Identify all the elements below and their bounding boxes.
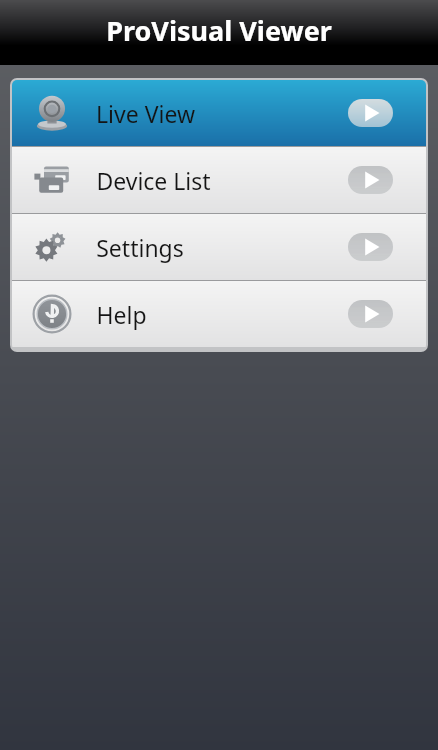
staticText: Device List: [96, 165, 211, 196]
button[interactable]: Live View: [12, 80, 426, 146]
button[interactable]: Settings: [12, 214, 426, 280]
staticText: Live View: [96, 98, 195, 129]
button[interactable]: Open: [348, 300, 393, 328]
button[interactable]: Open: [348, 99, 393, 127]
button[interactable]: Open: [348, 233, 393, 261]
button[interactable]: Help: [12, 281, 426, 347]
button[interactable]: Open: [348, 166, 393, 194]
staticText: Help: [96, 299, 147, 330]
staticText: ProVisual Viewer: [106, 12, 332, 49]
button[interactable]: Device List: [12, 147, 426, 213]
staticText: Settings: [96, 232, 184, 263]
